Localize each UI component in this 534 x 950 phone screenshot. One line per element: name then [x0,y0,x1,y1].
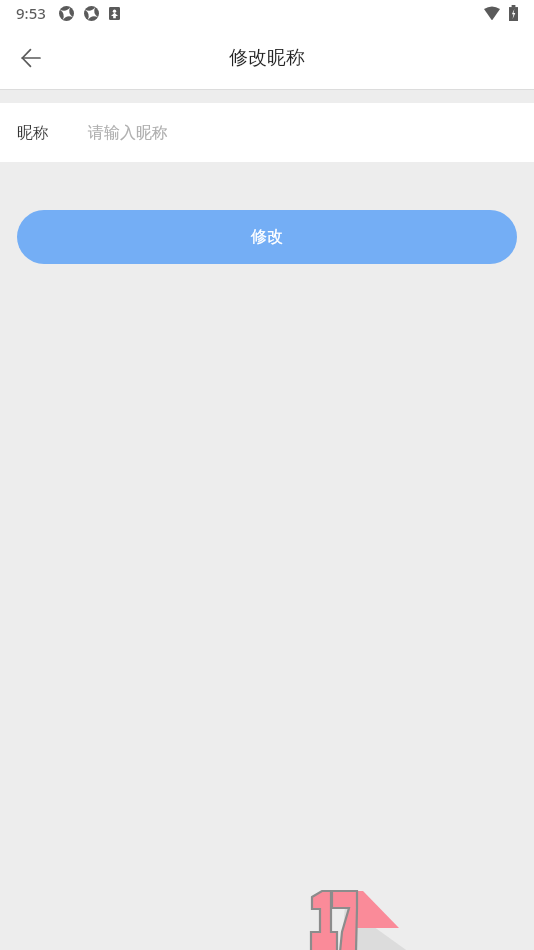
button[interactable]: 昵称 [0,103,534,162]
button[interactable]: 修改 [17,210,517,264]
staticText: 请输入昵称 [88,123,168,143]
button[interactable]: Back [7,34,55,82]
staticText: 9:53 [16,3,46,23]
staticText: 修改 [251,227,283,247]
staticText: 修改昵称 [229,46,305,70]
staticText: 昵称 [17,123,49,143]
